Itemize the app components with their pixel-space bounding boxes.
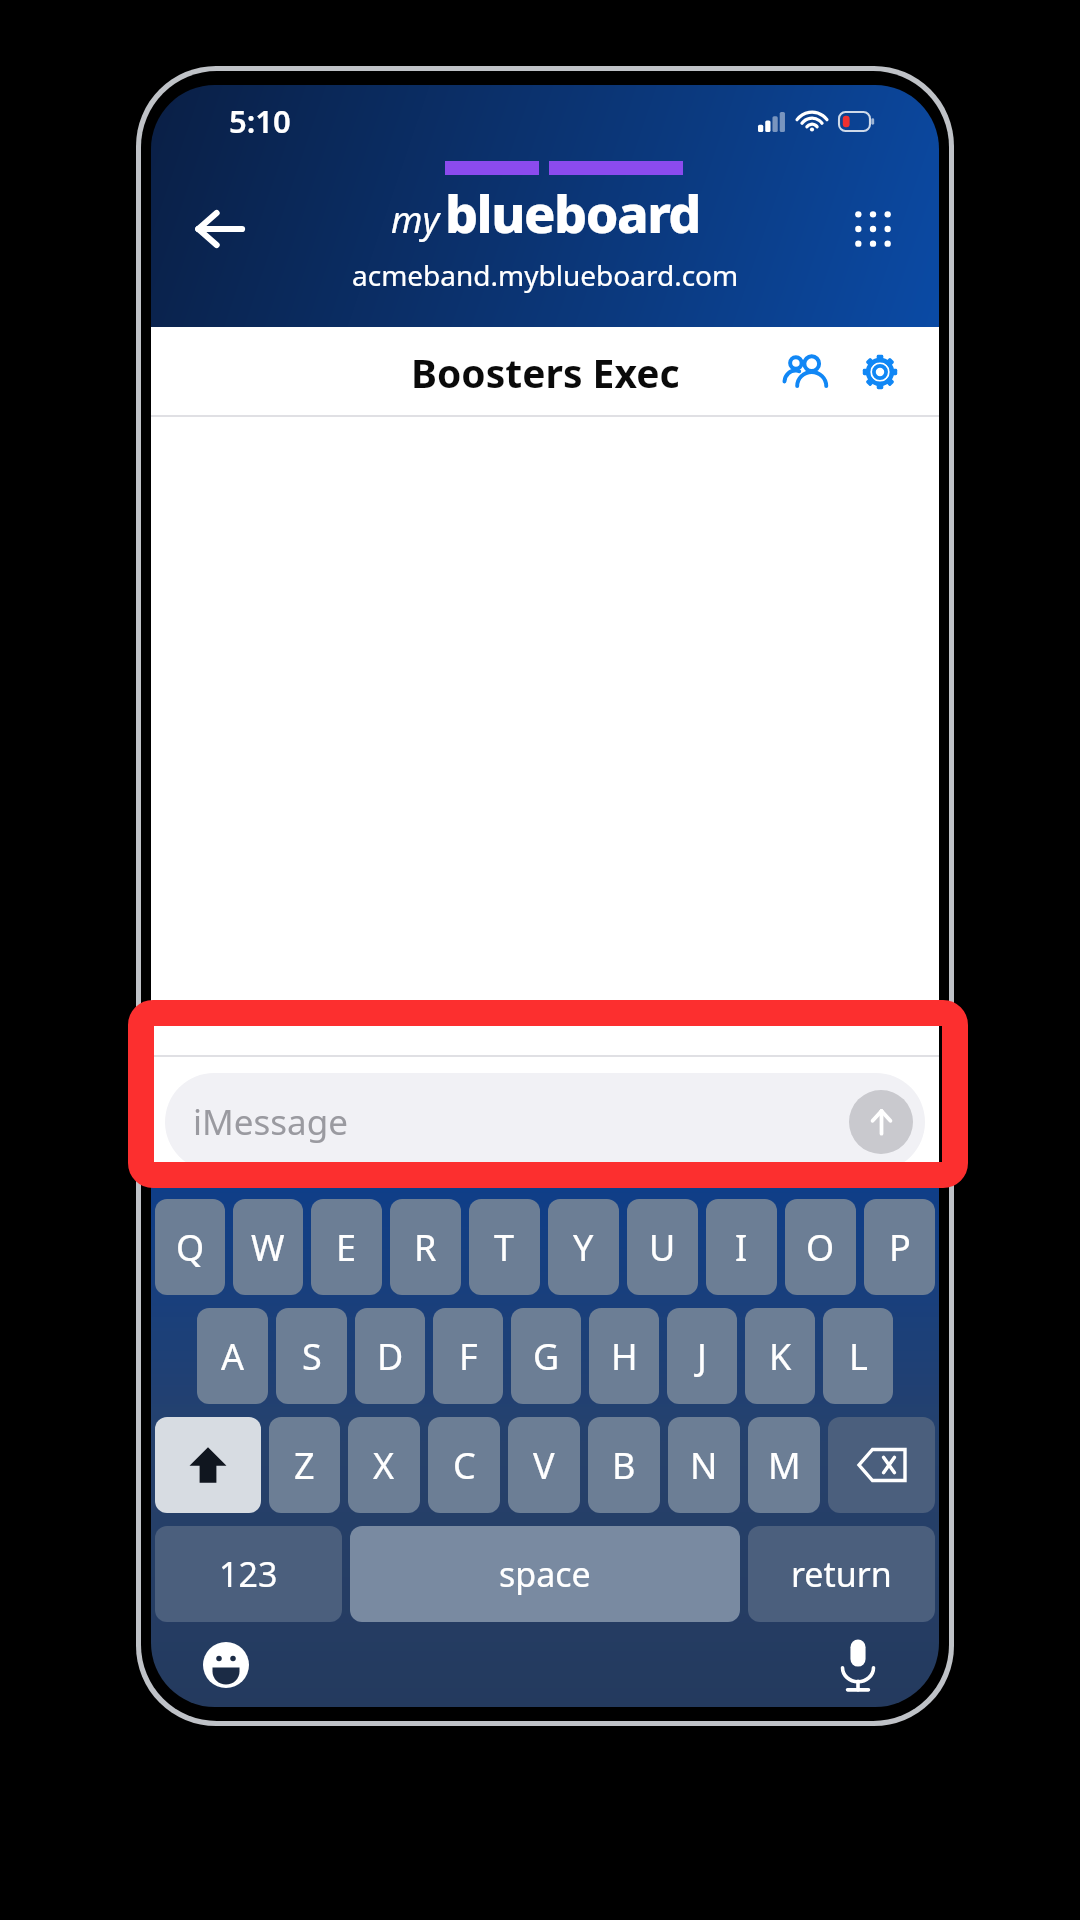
button[interactable]: F: [433, 1308, 503, 1404]
staticText: T: [494, 1223, 515, 1272]
button[interactable]: Dictation: [823, 1630, 893, 1700]
staticText: K: [769, 1332, 792, 1381]
button[interactable]: O: [785, 1199, 856, 1295]
button[interactable]: B: [588, 1417, 660, 1513]
staticText: W: [251, 1223, 285, 1272]
button[interactable]: H: [589, 1308, 659, 1404]
staticText: P: [889, 1223, 911, 1272]
button[interactable]: Emoji: [191, 1630, 261, 1700]
button[interactable]: I: [706, 1199, 777, 1295]
button[interactable]: 123: [155, 1526, 342, 1622]
staticText: S: [302, 1332, 322, 1381]
staticText: R: [414, 1223, 437, 1272]
staticText: O: [806, 1223, 835, 1272]
button[interactable]: Shift: [155, 1417, 261, 1513]
staticText: B: [612, 1441, 636, 1490]
staticText: return: [791, 1551, 892, 1597]
button[interactable]: M: [748, 1417, 820, 1513]
button[interactable]: L: [823, 1308, 893, 1404]
button[interactable]: U: [627, 1199, 698, 1295]
button[interactable]: Back: [175, 185, 263, 273]
staticText: V: [533, 1441, 555, 1490]
staticText: L: [849, 1332, 868, 1381]
staticText: 123: [219, 1551, 278, 1597]
button[interactable]: Settings: [847, 339, 913, 405]
staticText: Z: [294, 1441, 315, 1490]
staticText: Q: [176, 1223, 205, 1272]
button[interactable]: W: [233, 1199, 303, 1295]
staticText: G: [533, 1332, 560, 1381]
staticText: F: [459, 1332, 478, 1381]
staticText: space: [499, 1551, 591, 1597]
button[interactable]: X: [348, 1417, 420, 1513]
button[interactable]: return: [748, 1526, 935, 1622]
staticText: D: [377, 1332, 404, 1381]
button[interactable]: S: [276, 1308, 347, 1404]
staticText: U: [649, 1223, 676, 1272]
button[interactable]: iMessage: [165, 1073, 925, 1171]
button[interactable]: G: [511, 1308, 581, 1404]
button[interactable]: D: [355, 1308, 425, 1404]
button[interactable]: Backspace: [828, 1417, 935, 1513]
staticText: N: [690, 1441, 718, 1490]
button[interactable]: R: [390, 1199, 461, 1295]
staticText: acmeband.myblueboard.com: [352, 256, 739, 294]
button[interactable]: P: [864, 1199, 935, 1295]
button[interactable]: space: [350, 1526, 740, 1622]
button[interactable]: K: [745, 1308, 815, 1404]
staticText: C: [453, 1441, 476, 1490]
staticText: Y: [573, 1223, 594, 1272]
staticText: my: [391, 195, 440, 244]
button[interactable]: V: [508, 1417, 580, 1513]
button[interactable]: N: [668, 1417, 740, 1513]
button[interactable]: Z: [269, 1417, 340, 1513]
staticText: M: [768, 1441, 801, 1490]
button[interactable]: More options: [829, 185, 917, 273]
button[interactable]: E: [311, 1199, 382, 1295]
staticText: iMessage: [193, 1098, 348, 1146]
staticText: I: [735, 1223, 748, 1272]
staticText: Boosters Exec: [411, 346, 680, 399]
staticText: H: [611, 1332, 638, 1381]
staticText: J: [697, 1332, 707, 1381]
button[interactable]: Send: [849, 1090, 913, 1154]
button[interactable]: Members: [773, 339, 839, 405]
staticText: 5:10: [229, 100, 291, 142]
button[interactable]: C: [428, 1417, 500, 1513]
button[interactable]: T: [469, 1199, 540, 1295]
button[interactable]: Q: [155, 1199, 225, 1295]
button[interactable]: J: [667, 1308, 737, 1404]
staticText: A: [221, 1332, 245, 1381]
button[interactable]: A: [197, 1308, 268, 1404]
staticText: X: [373, 1441, 395, 1490]
staticText: E: [336, 1223, 357, 1272]
staticText: blueboard: [445, 177, 700, 248]
button[interactable]: Y: [548, 1199, 619, 1295]
